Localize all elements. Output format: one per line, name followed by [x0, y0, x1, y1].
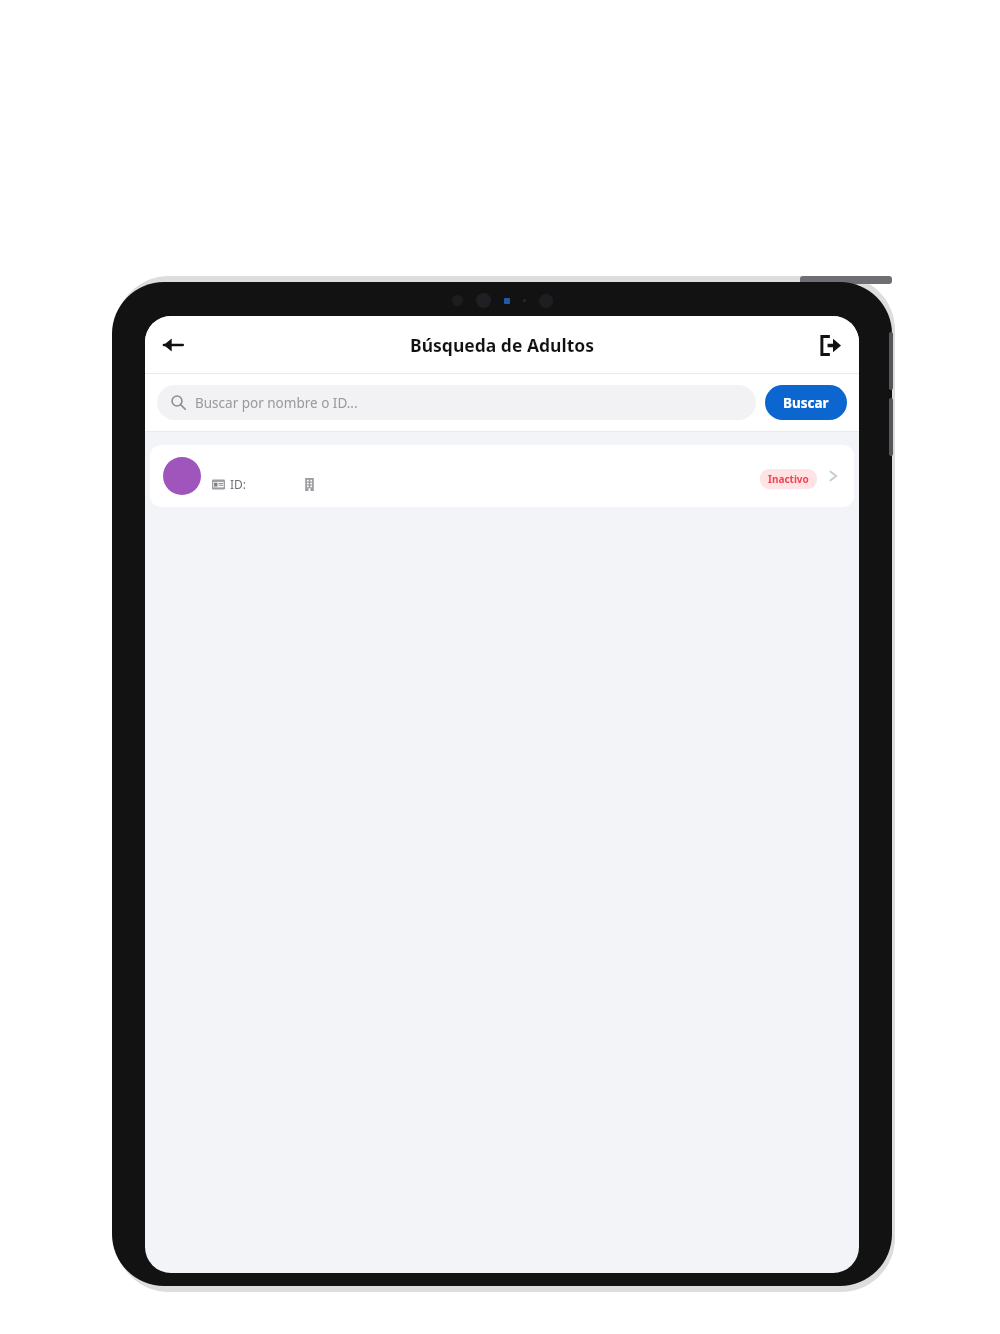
button[interactable]: Buscar por nombre o ID...: [157, 385, 756, 420]
staticText: Inactivo: [768, 472, 809, 486]
button[interactable]: ID:: [150, 445, 854, 507]
button[interactable]: Cerrar sesión: [808, 323, 852, 367]
staticText: Buscar por nombre o ID...: [195, 394, 358, 412]
staticText: ID:: [230, 476, 247, 492]
button[interactable]: Atrás: [151, 323, 195, 367]
button[interactable]: Buscar: [765, 385, 847, 420]
staticText: Buscar: [783, 394, 829, 412]
staticText: Búsqueda de Adultos: [410, 333, 594, 357]
